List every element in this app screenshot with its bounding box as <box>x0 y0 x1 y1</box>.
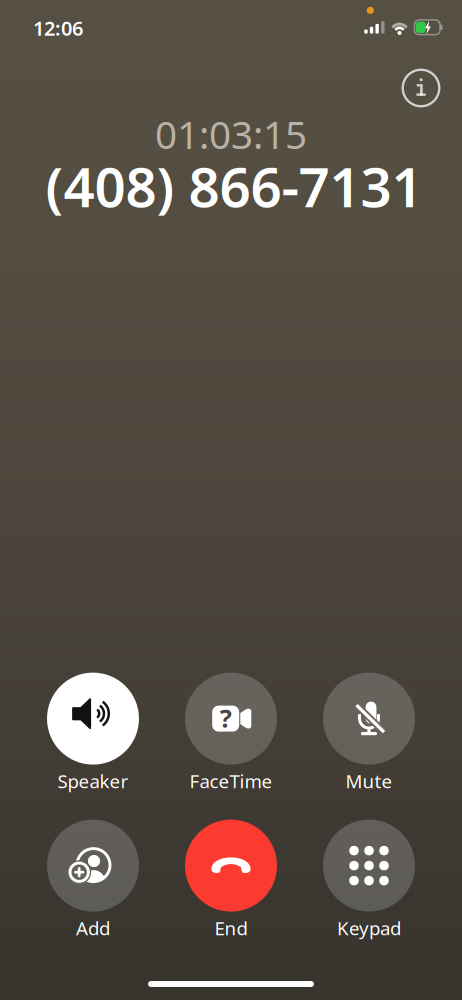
staticText: Mute <box>345 769 392 793</box>
staticText: Keypad <box>337 916 401 940</box>
button[interactable]: Add call <box>24 820 162 940</box>
staticText: (408) 866-7131 <box>45 150 422 222</box>
button[interactable]: End call <box>162 820 300 940</box>
button[interactable]: FaceTime <box>162 673 300 793</box>
button[interactable]: Keypad <box>300 820 438 940</box>
staticText: Speaker <box>57 769 128 793</box>
staticText: Add <box>76 916 110 940</box>
staticText: ? <box>220 701 232 735</box>
button[interactable]: Call info <box>394 61 447 114</box>
staticText: End <box>214 916 247 940</box>
staticText: FaceTime <box>189 769 272 793</box>
button[interactable]: Speaker <box>24 673 162 793</box>
staticText: 12:06 <box>33 15 83 41</box>
button[interactable]: Mute <box>300 673 438 793</box>
staticText: 01:03:15 <box>155 108 307 160</box>
